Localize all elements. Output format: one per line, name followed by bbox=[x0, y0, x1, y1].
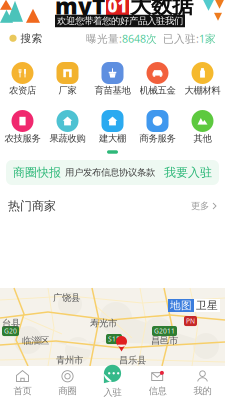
button[interactable]: 商圈 bbox=[45, 366, 90, 400]
staticText: myT bbox=[55, 0, 105, 21]
staticText: 昌邑市 bbox=[151, 335, 178, 346]
button[interactable]: 我要入驻 bbox=[164, 165, 212, 180]
staticText: 育苗基地 bbox=[94, 84, 130, 96]
staticText: 建大棚 bbox=[99, 132, 126, 144]
button[interactable]: 厂家 bbox=[45, 62, 90, 96]
staticText: 用户发布信息协议条款 bbox=[65, 167, 155, 178]
button[interactable]: 农技服务 bbox=[0, 110, 45, 144]
staticText: 商务服务 bbox=[139, 132, 175, 144]
staticText: 商圈 bbox=[58, 385, 76, 397]
staticText: 寿光市 bbox=[90, 317, 117, 329]
staticText: 卫星 bbox=[196, 299, 218, 312]
staticText: 1家 bbox=[199, 31, 216, 46]
button[interactable]: 搜索 bbox=[9, 32, 42, 45]
staticText: 搜索 bbox=[20, 32, 42, 45]
staticText: 8648次 bbox=[122, 31, 157, 46]
staticText: 入驻 bbox=[103, 387, 121, 398]
staticText: 01 bbox=[107, 0, 127, 17]
staticText: G2011 bbox=[154, 327, 175, 335]
staticText: 青州市 bbox=[56, 354, 83, 366]
button[interactable]: 地图 bbox=[168, 299, 194, 312]
staticText: 曝光量: bbox=[86, 31, 122, 46]
staticText: 临淄区 bbox=[22, 335, 49, 346]
staticText: 果蔬收购 bbox=[49, 132, 85, 144]
staticText: 机械五金 bbox=[139, 84, 175, 96]
staticText: 台县 bbox=[2, 317, 20, 329]
button[interactable]: 入驻 bbox=[90, 366, 135, 400]
button[interactable]: 农资店 bbox=[0, 62, 45, 96]
staticText: 农技服务 bbox=[4, 132, 40, 144]
staticText: 热门商家 bbox=[8, 199, 56, 213]
button[interactable]: 大棚材料 bbox=[180, 62, 225, 96]
button[interactable]: 建大棚 bbox=[90, 110, 135, 144]
button[interactable]: 育苗基地 bbox=[90, 62, 135, 96]
staticText: 已入驻: bbox=[163, 31, 199, 46]
button[interactable]: 其他 bbox=[180, 110, 225, 144]
staticText: 信息 bbox=[148, 385, 166, 397]
staticText: 厂家 bbox=[58, 84, 76, 96]
staticText: PN bbox=[186, 317, 195, 325]
staticText: S15 bbox=[108, 335, 120, 343]
staticText: 其他 bbox=[193, 132, 211, 144]
staticText: 我要入驻 bbox=[164, 165, 212, 180]
staticText: 商圈快报 bbox=[13, 165, 61, 180]
button[interactable]: 卫星 bbox=[194, 299, 220, 312]
staticText: 大数据 bbox=[130, 0, 193, 19]
staticText: 地图 bbox=[170, 299, 192, 312]
staticText: 更多 bbox=[191, 200, 209, 212]
button[interactable]: 更多 bbox=[191, 200, 217, 212]
staticText: 广饶县 bbox=[53, 292, 80, 303]
staticText: 昌乐县 bbox=[119, 354, 146, 366]
button[interactable]: 商务服务 bbox=[135, 110, 180, 144]
button[interactable]: 机械五金 bbox=[135, 62, 180, 96]
staticText: 首页 bbox=[13, 385, 31, 397]
staticText: 欢迎您带着您的好产品入驻我们 bbox=[57, 15, 183, 27]
staticText: G20 bbox=[4, 327, 17, 335]
button[interactable]: 果蔬收购 bbox=[45, 110, 90, 144]
button[interactable]: myT bbox=[0, 0, 225, 27]
staticText: 我的 bbox=[193, 385, 211, 397]
staticText: 大棚材料 bbox=[184, 84, 220, 96]
staticText: 农资店 bbox=[9, 84, 36, 96]
button[interactable]: 首页 bbox=[0, 366, 45, 400]
button[interactable]: 信息 bbox=[135, 366, 180, 400]
button[interactable]: 我的 bbox=[180, 366, 225, 400]
